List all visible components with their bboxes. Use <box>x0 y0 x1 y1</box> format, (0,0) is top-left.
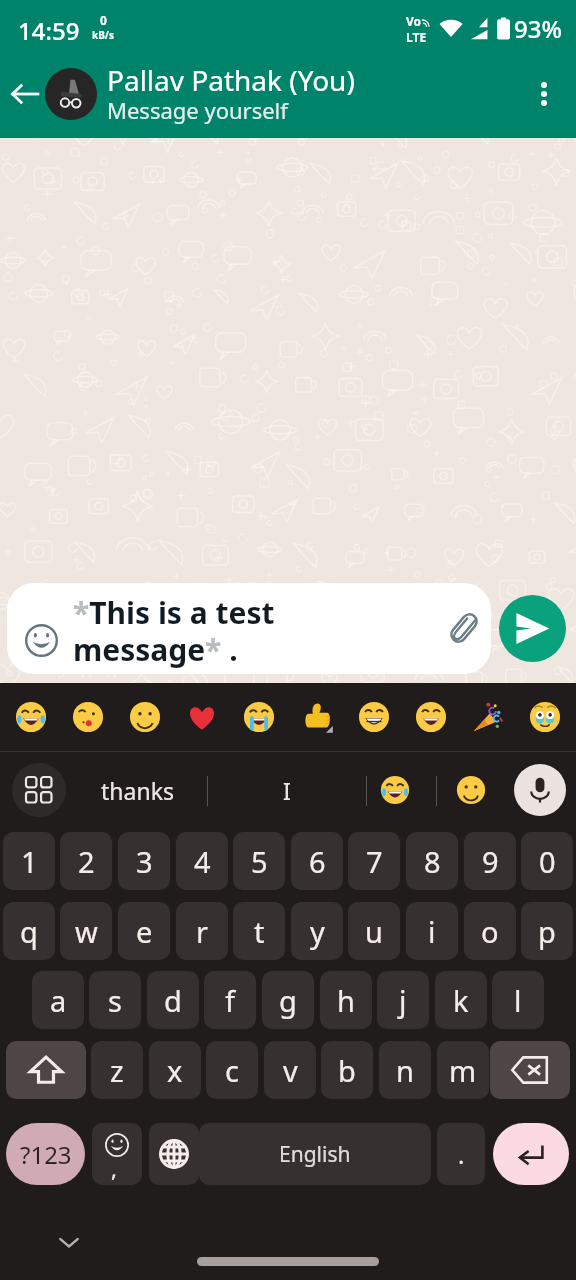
staticText: 1 <box>21 842 38 881</box>
staticText: e <box>136 912 153 951</box>
staticText: n <box>396 1051 414 1090</box>
button[interactable]: r <box>176 902 228 960</box>
staticText: h <box>337 981 355 1020</box>
button[interactable]: x <box>149 1041 201 1099</box>
staticText: thanks <box>101 775 174 806</box>
button[interactable]: t <box>233 902 285 960</box>
button[interactable]: p <box>521 902 573 960</box>
staticText: c <box>225 1051 239 1090</box>
button[interactable]: Party <box>462 691 514 743</box>
staticText: 2 <box>78 842 95 881</box>
button[interactable]: Voice input <box>514 764 566 816</box>
button[interactable]: b <box>321 1041 373 1099</box>
staticText: f <box>225 981 235 1020</box>
button[interactable]: thanks <box>87 763 187 817</box>
button[interactable]: n <box>379 1041 431 1099</box>
staticText: a <box>50 981 67 1020</box>
staticText: w <box>75 912 98 951</box>
staticText: y <box>310 912 325 951</box>
button[interactable]: Toolbar <box>12 763 66 817</box>
staticText: 93% <box>514 12 562 45</box>
button[interactable]: Send <box>499 595 566 662</box>
button[interactable]: Back <box>0 69 50 119</box>
button[interactable]: m <box>437 1041 489 1099</box>
staticText: , <box>111 1153 117 1183</box>
staticText: . <box>458 1138 465 1171</box>
button[interactable]: 0 <box>521 832 573 890</box>
button[interactable]: w <box>60 902 112 960</box>
staticText: q <box>20 912 38 951</box>
button[interactable]: o <box>464 902 516 960</box>
button[interactable]: 4 <box>176 832 228 890</box>
button[interactable]: s <box>89 971 141 1029</box>
staticText: 6 <box>309 842 326 881</box>
button[interactable]: a <box>32 971 84 1029</box>
button[interactable]: Emoji <box>18 617 64 663</box>
button[interactable]: i <box>406 902 458 960</box>
staticText: 0 <box>100 12 107 28</box>
button[interactable]: Emoji keyboard <box>92 1123 142 1185</box>
button[interactable]: Shift <box>6 1041 86 1099</box>
button[interactable]: Pleading <box>519 691 571 743</box>
button[interactable]: Heart <box>176 691 228 743</box>
staticText: j <box>399 981 407 1020</box>
staticText: LTE <box>406 29 427 45</box>
button[interactable]: v <box>264 1041 316 1099</box>
staticText: 5 <box>251 842 268 881</box>
staticText: d <box>164 981 182 1020</box>
staticText: Message yourself <box>107 95 288 125</box>
button[interactable]: 6 <box>291 832 343 890</box>
button[interactable]: 8 <box>406 832 458 890</box>
button[interactable]: f <box>204 971 256 1029</box>
staticText: x <box>167 1051 183 1090</box>
button[interactable]: Kiss <box>62 691 114 743</box>
button[interactable]: h <box>320 971 372 1029</box>
button[interactable]: 1 <box>3 832 55 890</box>
button[interactable]: Thumbs up <box>291 691 343 743</box>
staticText: 3 <box>136 842 153 881</box>
button[interactable]: . <box>437 1123 485 1185</box>
button[interactable]: q <box>3 902 55 960</box>
button[interactable]: Smile <box>119 691 171 743</box>
button[interactable]: 3 <box>118 832 170 890</box>
button[interactable]: Change language <box>149 1123 199 1185</box>
button[interactable]: j <box>377 971 429 1029</box>
button[interactable]: ?123 <box>6 1123 85 1185</box>
staticText: 8 <box>424 842 441 881</box>
button[interactable]: 7 <box>348 832 400 890</box>
button[interactable]: k <box>435 971 487 1029</box>
button[interactable]: Profile photo <box>45 68 97 120</box>
button[interactable]: e <box>118 902 170 960</box>
staticText: 0 <box>539 842 556 881</box>
button[interactable]: d <box>147 971 199 1029</box>
button[interactable]: Hide keyboard <box>51 1224 87 1260</box>
button[interactable]: y <box>291 902 343 960</box>
button[interactable]: 5 <box>233 832 285 890</box>
button[interactable]: I <box>237 763 337 817</box>
button[interactable]: Attach <box>441 605 487 651</box>
button[interactable]: More options <box>518 68 570 120</box>
button[interactable]: English <box>199 1123 431 1185</box>
button[interactable]: Enter <box>493 1123 569 1185</box>
button[interactable]: Emoji <box>7 583 491 674</box>
staticText: Vo <box>406 13 422 29</box>
button[interactable]: Emoji suggestion 1 <box>377 772 413 808</box>
button[interactable]: Cry <box>233 691 285 743</box>
staticText: 4 <box>194 842 211 881</box>
button[interactable]: 2 <box>60 832 112 890</box>
button[interactable]: c <box>206 1041 258 1099</box>
button[interactable]: Grin <box>348 691 400 743</box>
button[interactable]: Backspace <box>490 1041 570 1099</box>
button[interactable]: l <box>492 971 544 1029</box>
staticText: 14:59 <box>18 14 80 47</box>
button[interactable]: u <box>348 902 400 960</box>
button[interactable]: z <box>91 1041 143 1099</box>
button[interactable]: g <box>262 971 314 1029</box>
button[interactable]: Smiling <box>405 691 457 743</box>
button[interactable]: Emoji suggestion 2 <box>453 772 489 808</box>
staticText: i <box>428 912 436 951</box>
staticText: r <box>196 912 208 951</box>
button[interactable]: 9 <box>464 832 516 890</box>
staticText: p <box>538 912 556 951</box>
button[interactable]: Joy <box>5 691 57 743</box>
